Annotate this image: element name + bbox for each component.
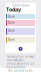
button[interactable]: Add: [18, 47, 22, 51]
staticText: the period ends.: [8, 69, 33, 72]
staticText: unless cancelled 24 hours before: [6, 62, 34, 69]
staticText: Item: [8, 29, 14, 32]
staticText: Item: [8, 21, 14, 24]
staticText: Item: [8, 38, 14, 41]
staticText: Overview: [12, 2, 29, 7]
staticText: Today: [6, 6, 21, 13]
staticText: Subscription renews automatically: [7, 55, 34, 62]
staticText: Item: [8, 15, 14, 18]
